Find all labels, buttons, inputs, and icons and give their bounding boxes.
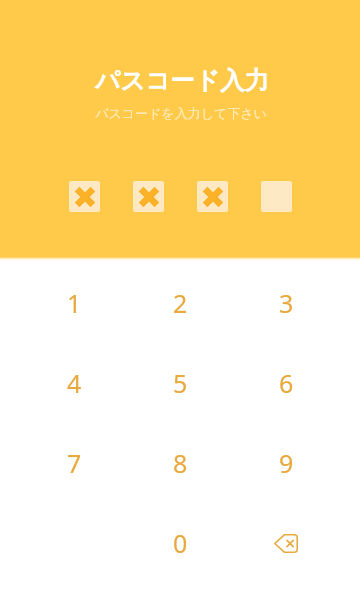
button[interactable]: 5: [127, 343, 233, 423]
staticText: 3: [279, 286, 294, 320]
staticText: 4: [67, 366, 82, 400]
staticText: 9: [279, 446, 294, 480]
button[interactable]: 1: [22, 263, 127, 343]
staticText: パスコードを入力して下さい: [95, 105, 267, 121]
button[interactable]: 2: [127, 263, 233, 343]
staticText: パスコード入力: [95, 65, 269, 96]
staticText: 7: [67, 446, 82, 480]
staticText: 2: [173, 286, 188, 320]
button[interactable]: 6: [233, 343, 339, 423]
button[interactable]: 0: [127, 503, 233, 583]
staticText: 6: [279, 366, 294, 400]
button[interactable]: 7: [22, 423, 127, 503]
button[interactable]: 4: [22, 343, 127, 423]
button[interactable]: 8: [127, 423, 233, 503]
button[interactable]: 9: [233, 423, 339, 503]
staticText: 0: [173, 526, 188, 560]
button[interactable]: Backspace: [233, 503, 339, 583]
staticText: 5: [173, 366, 188, 400]
staticText: 8: [173, 446, 188, 480]
staticText: 1: [67, 286, 82, 320]
button[interactable]: 3: [233, 263, 339, 343]
